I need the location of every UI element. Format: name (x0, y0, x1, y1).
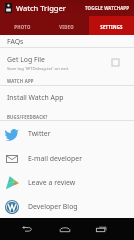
button[interactable]: Get Log File (0, 48, 134, 77)
button[interactable]: TOGGLE WATCHAPP (81, 2, 134, 14)
staticText: VIDEO (59, 24, 74, 30)
staticText: SETTINGS (100, 24, 123, 30)
staticText: WATCH APP (7, 78, 34, 84)
button[interactable]: FAQs (0, 35, 134, 47)
staticText: Install Watch App (7, 93, 64, 102)
staticText: Developer Blog (28, 202, 78, 211)
button[interactable]: Twitter (0, 121, 134, 146)
staticText: BUGS/FEEDBACK? (7, 114, 48, 120)
staticText: Watch Trigger (16, 3, 66, 13)
staticText: PHOTO (14, 24, 31, 30)
staticText: Leave a review (28, 178, 76, 187)
button[interactable]: Developer Blog (0, 194, 134, 219)
button[interactable]: Back (19, 218, 35, 240)
staticText: FAQs (7, 37, 24, 46)
button[interactable]: E-mail developer (0, 146, 134, 171)
staticText: E-mail developer (28, 154, 82, 163)
button[interactable]: Home (57, 218, 73, 240)
button[interactable]: VIDEO (44, 16, 89, 35)
staticText: TOGGLE WATCHAPP (85, 5, 130, 11)
staticText: Twitter (28, 129, 51, 138)
staticText: Save log 'WTDebug.txt' on exit (7, 65, 69, 71)
staticText: Get Log File (7, 55, 46, 64)
button[interactable]: PHOTO (0, 16, 44, 35)
button[interactable]: Install Watch App (0, 86, 134, 108)
button[interactable]: SETTINGS (89, 16, 134, 35)
button[interactable]: Recents (93, 218, 109, 240)
button[interactable]: Leave a review (0, 170, 134, 195)
